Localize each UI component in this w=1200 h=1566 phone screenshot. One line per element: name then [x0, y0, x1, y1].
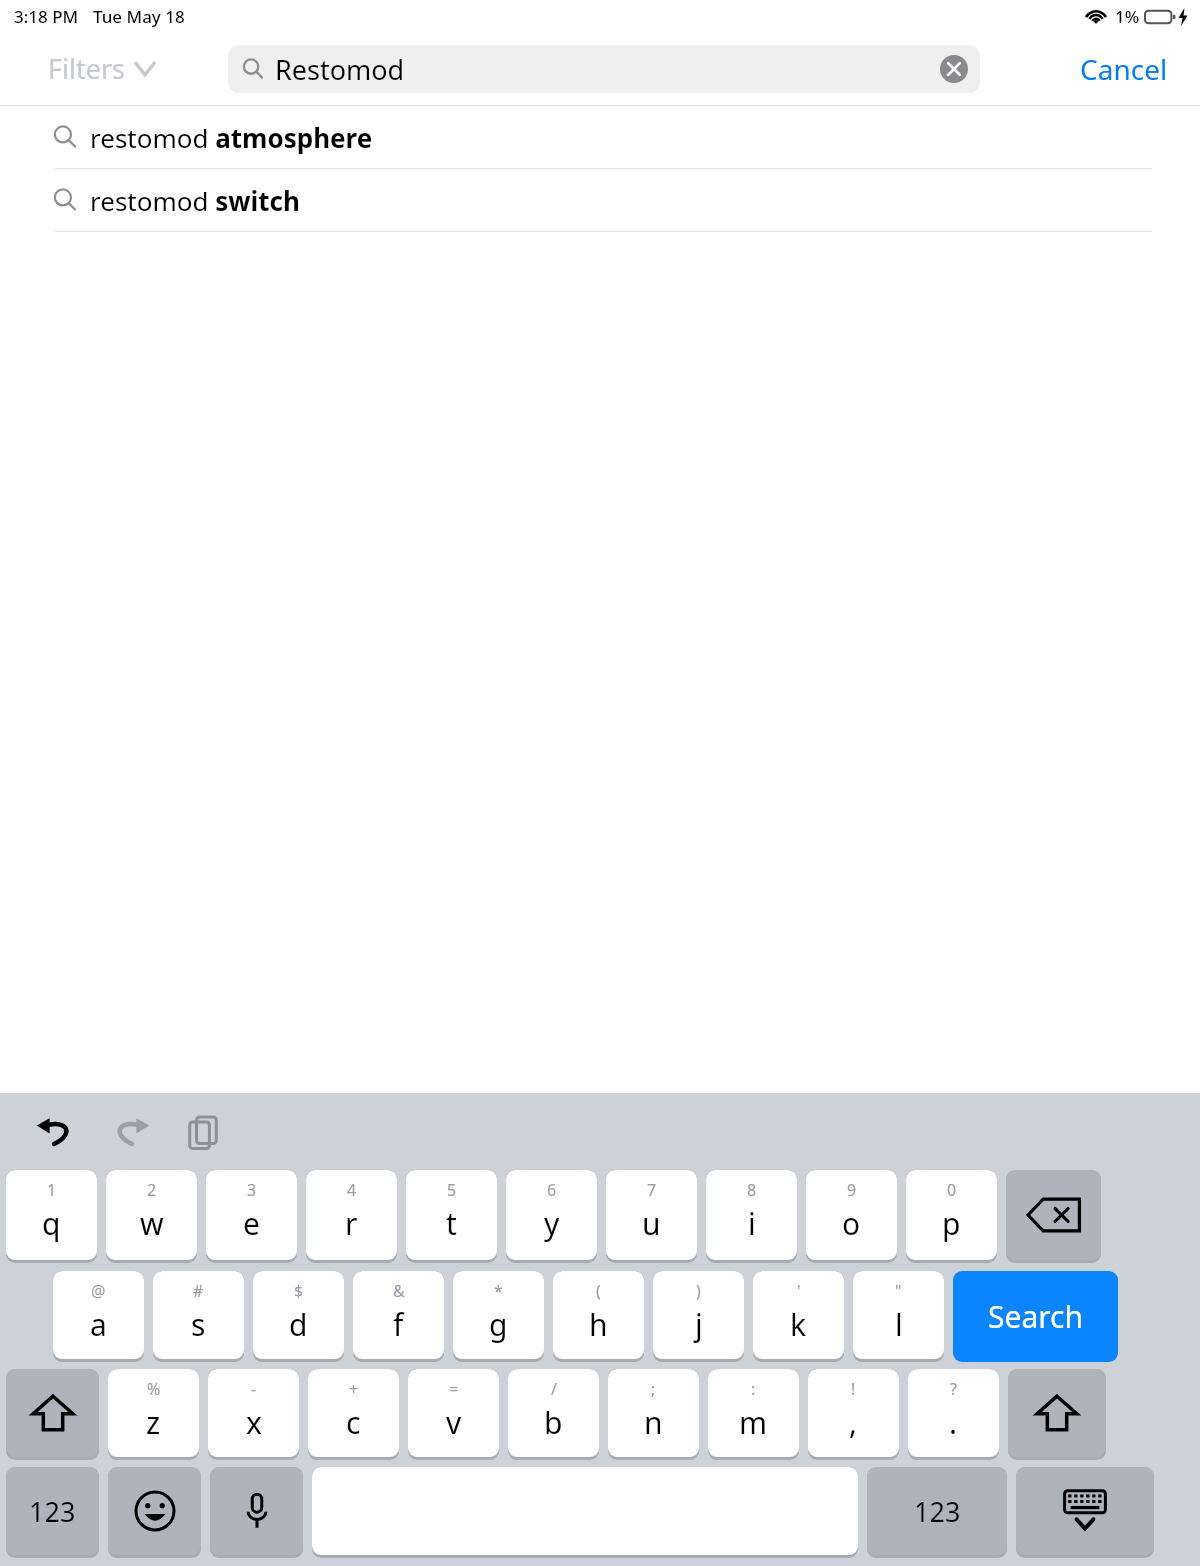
button[interactable]: / [508, 1369, 599, 1457]
button[interactable]: ? [908, 1369, 999, 1457]
button[interactable]: 9 [806, 1170, 897, 1260]
staticText: e [243, 1203, 260, 1244]
button[interactable]: 2 [106, 1170, 197, 1260]
button[interactable]: $ [253, 1271, 344, 1359]
button[interactable]: 0 [906, 1170, 997, 1260]
staticText: x [246, 1402, 262, 1443]
button[interactable]: Filters [48, 50, 155, 87]
button[interactable]: # [153, 1271, 244, 1359]
other: Shift [31, 1393, 75, 1433]
button[interactable]: Undo [30, 1106, 82, 1158]
staticText: restomod switch [90, 183, 300, 218]
staticText: Restomod [275, 51, 405, 88]
staticText: r [345, 1203, 358, 1244]
staticText: a [90, 1304, 107, 1345]
staticText: u [642, 1203, 661, 1244]
staticText: o [842, 1203, 861, 1244]
button[interactable]: Dictation [210, 1467, 303, 1555]
staticText: / [551, 1378, 557, 1400]
staticText: y [544, 1203, 560, 1244]
button[interactable]: ( [553, 1271, 644, 1359]
staticText: 1 [47, 1179, 57, 1201]
staticText: ? [950, 1378, 957, 1400]
other: Hide keyboard [1055, 1488, 1115, 1534]
other: Emoji [134, 1490, 176, 1532]
staticText: ! [851, 1378, 856, 1400]
staticText: t [446, 1203, 457, 1244]
button[interactable]: 7 [606, 1170, 697, 1260]
button[interactable]: Paste [178, 1106, 230, 1158]
staticText: 7 [647, 1179, 657, 1201]
button[interactable]: Shift [1008, 1369, 1106, 1457]
button[interactable]: ! [808, 1369, 899, 1457]
button[interactable]: % [108, 1369, 199, 1457]
button[interactable]: 8 [706, 1170, 797, 1260]
button[interactable]: 123 [6, 1467, 99, 1555]
staticText: 123 [914, 1493, 961, 1530]
button[interactable]: Restomod [228, 45, 980, 93]
staticText: q [42, 1203, 61, 1244]
staticText: k [790, 1304, 807, 1345]
button[interactable]: Emoji [108, 1467, 201, 1555]
staticText: p [942, 1203, 961, 1244]
button[interactable]: = [408, 1369, 499, 1457]
button[interactable]: ; [608, 1369, 699, 1457]
button[interactable]: Cancel [1080, 50, 1168, 88]
staticText: ; [651, 1378, 656, 1400]
staticText: 0 [947, 1179, 957, 1201]
button[interactable]: Shift [6, 1369, 99, 1457]
staticText: v [446, 1402, 462, 1443]
button[interactable]: Search [953, 1271, 1118, 1362]
staticText: ' [797, 1280, 801, 1302]
staticText: 3 [247, 1179, 257, 1201]
staticText: & [393, 1280, 405, 1302]
button[interactable]: 6 [506, 1170, 597, 1260]
staticText: s [191, 1304, 206, 1345]
button[interactable]: * [453, 1271, 544, 1359]
staticText: 2 [147, 1179, 157, 1201]
button[interactable]: ) [653, 1271, 744, 1359]
button[interactable]: - [208, 1369, 299, 1457]
button[interactable]: : [708, 1369, 799, 1457]
staticText: 8 [747, 1179, 757, 1201]
staticText: " [895, 1280, 902, 1302]
button[interactable]: " [853, 1271, 944, 1359]
button[interactable]: Backspace [1006, 1170, 1101, 1260]
staticText: f [393, 1304, 404, 1345]
staticText: , [849, 1402, 858, 1443]
button[interactable]: 123 [867, 1467, 1007, 1555]
button[interactable]: Clear text [940, 55, 968, 83]
staticText: . [949, 1402, 958, 1443]
button[interactable]: restomod switch [0, 169, 1200, 231]
button[interactable]: 1 [6, 1170, 97, 1260]
staticText: l [895, 1304, 903, 1345]
other: Dictation [243, 1491, 271, 1531]
staticText: * [494, 1280, 503, 1302]
staticText: Filters [48, 50, 126, 87]
staticText: Tue May 18 [93, 5, 185, 28]
button[interactable]: & [353, 1271, 444, 1359]
button[interactable]: restomod atmosphere [0, 106, 1200, 168]
staticText: 6 [547, 1179, 557, 1201]
staticText: d [289, 1304, 308, 1345]
button[interactable]: 5 [406, 1170, 497, 1260]
staticText: 9 [847, 1179, 857, 1201]
staticText: ) [696, 1280, 701, 1302]
staticText: + [349, 1378, 359, 1400]
staticText: $ [294, 1280, 304, 1302]
button[interactable]: @ [53, 1271, 144, 1359]
button[interactable]: 4 [306, 1170, 397, 1260]
button[interactable]: Hide keyboard [1016, 1467, 1154, 1555]
staticText: 5 [447, 1179, 457, 1201]
button[interactable]: Redo [104, 1106, 156, 1158]
button[interactable]: ' [753, 1271, 844, 1359]
staticText: : [751, 1378, 756, 1400]
other: Backspace [1027, 1197, 1081, 1233]
staticText: z [146, 1402, 161, 1443]
button[interactable]: + [308, 1369, 399, 1457]
staticText: - [251, 1378, 257, 1400]
staticText: 123 [29, 1493, 76, 1530]
button[interactable]: 3 [206, 1170, 297, 1260]
staticText: n [644, 1402, 663, 1443]
